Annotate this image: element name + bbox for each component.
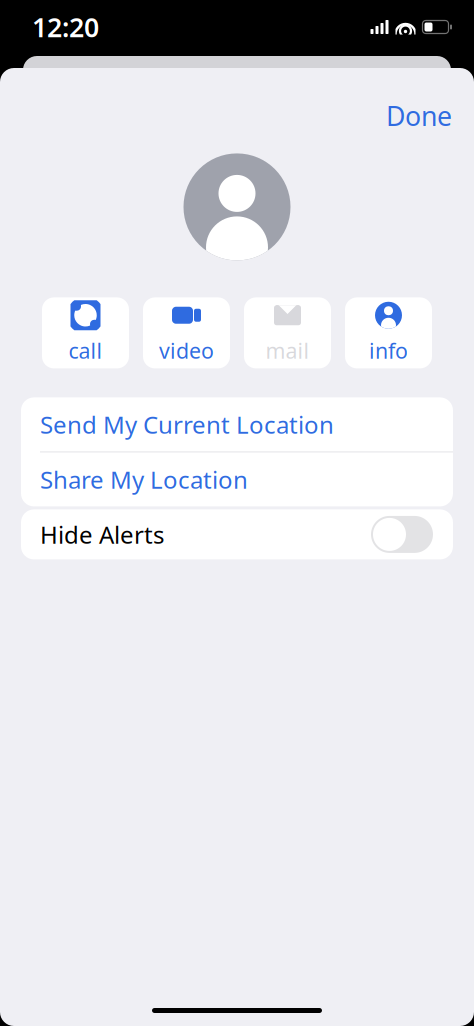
button[interactable]: Send My Current Location xyxy=(21,397,453,451)
staticText: Share My Location xyxy=(40,463,248,495)
button[interactable]: Share My Location xyxy=(21,452,453,506)
staticText: info xyxy=(369,336,408,364)
button[interactable]: info xyxy=(345,297,432,368)
staticText: call xyxy=(68,336,102,364)
button[interactable]: Done xyxy=(376,90,462,141)
button[interactable]: video xyxy=(143,297,230,368)
staticText: mail xyxy=(265,336,309,364)
staticText: 12:20 xyxy=(32,9,99,45)
button[interactable]: call xyxy=(42,297,129,368)
staticText: Hide Alerts xyxy=(40,518,164,550)
button[interactable]: Hide Alerts xyxy=(21,509,453,559)
staticText: Done xyxy=(386,98,452,133)
staticText: Send My Current Location xyxy=(40,408,334,440)
staticText: video xyxy=(159,336,214,364)
button[interactable]: mail xyxy=(244,297,331,368)
